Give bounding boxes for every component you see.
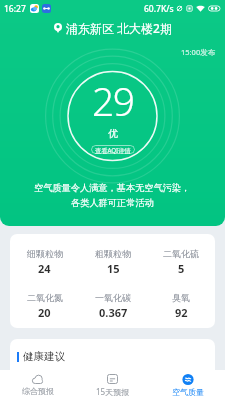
button[interactable]: 15天预报 (75, 370, 150, 400)
staticText: 24 (38, 261, 51, 276)
staticText: 臭氧 (172, 292, 190, 303)
staticText: 92 (175, 305, 188, 320)
staticText: 空气质量令人满意，基本无空气污染， (34, 182, 191, 194)
staticText: 16:27 (4, 3, 26, 15)
staticText: 二氧化硫 (163, 248, 199, 259)
staticText: 空气质量 (172, 387, 204, 397)
button[interactable]: 查看AQI详情 (91, 145, 135, 154)
button[interactable]: 浦东新区 北大楼2期 (54, 20, 172, 36)
button[interactable]: 综合预报 (0, 370, 75, 400)
staticText: 浦东新区 北大楼2期 (66, 20, 172, 36)
staticText: 0.367 (99, 305, 128, 320)
staticText: 二氧化氮 (27, 292, 63, 303)
staticText: 各类人群可正常活动 (71, 197, 154, 209)
staticText: 15:00发布 (181, 47, 216, 57)
staticText: 29 (92, 74, 134, 127)
button[interactable]: 空气质量 (150, 370, 225, 400)
staticText: 综合预报 (22, 386, 54, 396)
staticText: 优 (108, 127, 118, 140)
staticText: 20 (38, 305, 51, 320)
staticText: 15天预报 (96, 386, 130, 397)
staticText: 15 (107, 261, 120, 276)
staticText: 5 (178, 261, 185, 276)
staticText: 健康建议 (23, 350, 65, 363)
staticText: 查看AQI详情 (95, 146, 131, 154)
staticText: 60.7K/s (144, 3, 174, 15)
staticText: 细颗粒物 (27, 248, 63, 259)
staticText: 粗颗粒物 (95, 248, 131, 259)
staticText: 一氧化碳 (95, 292, 131, 303)
